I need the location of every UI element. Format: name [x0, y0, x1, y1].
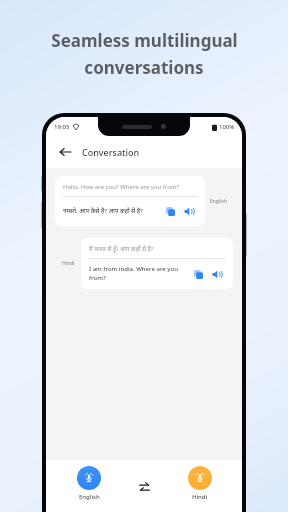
- staticText: मैं भारत से हूँ। आप कहाँ से हैं?: [89, 245, 154, 253]
- button[interactable]: Swap languages: [131, 474, 157, 500]
- staticText: I am from india. Where are you from?: [89, 265, 184, 282]
- staticText: Seamless multilingual: [51, 29, 238, 52]
- staticText: English: [79, 493, 100, 501]
- staticText: English: [210, 198, 228, 205]
- staticText: Hello, How are you? Where are you from?: [63, 183, 180, 191]
- staticText: 100%: [219, 123, 235, 131]
- button[interactable]: Back: [56, 143, 74, 161]
- button[interactable]: Hello, How are you? Where are you from?: [55, 176, 205, 226]
- staticText: Conversation: [82, 146, 140, 158]
- button[interactable]: Play audio: [181, 203, 197, 219]
- button[interactable]: मैं भारत से हूँ। आप कहाँ से हैं?: [81, 238, 233, 289]
- staticText: Hindi: [192, 493, 208, 501]
- staticText: 19:05: [54, 123, 70, 131]
- button[interactable]: Copy: [190, 266, 206, 282]
- staticText: नमस्ते, आप कैसे हैं? आप कहाँ से हैं?: [63, 207, 156, 215]
- button[interactable]: Copy: [162, 203, 178, 219]
- button[interactable]: Play audio: [209, 266, 225, 282]
- staticText: conversations: [84, 56, 204, 79]
- button[interactable]: English: [73, 466, 105, 501]
- button[interactable]: Hindi: [184, 466, 216, 501]
- staticText: Hindi: [62, 260, 75, 267]
